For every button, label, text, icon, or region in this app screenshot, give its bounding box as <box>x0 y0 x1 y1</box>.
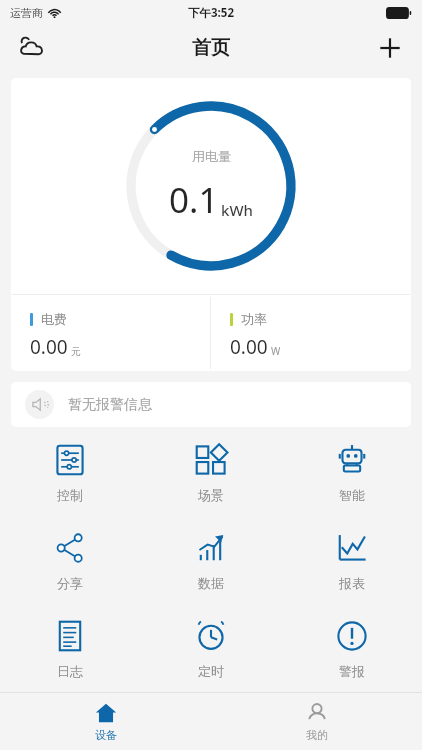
button[interactable]: 智能 <box>281 441 422 505</box>
button[interactable]: 警报 <box>281 617 422 681</box>
button[interactable]: 设备 <box>0 693 211 750</box>
button[interactable]: Weather <box>12 28 52 68</box>
button[interactable]: 定时 <box>140 617 281 681</box>
staticText: 我的 <box>306 728 328 742</box>
staticText: 分享 <box>57 575 83 591</box>
button[interactable]: 日志 <box>0 617 140 681</box>
staticText: 0.1 <box>169 176 219 224</box>
staticText: 定时 <box>198 663 224 679</box>
staticText: 功率 <box>241 311 267 327</box>
staticText: 首页 <box>192 36 230 60</box>
staticText: 智能 <box>339 487 365 503</box>
button[interactable]: 报表 <box>281 529 422 593</box>
staticText: 0.00 <box>30 334 68 360</box>
staticText: 场景 <box>198 487 224 503</box>
button[interactable]: 暂无报警信息 <box>11 382 411 427</box>
button[interactable]: 分享 <box>0 529 140 593</box>
staticText: 运营商 <box>10 6 43 20</box>
staticText: 下午3:52 <box>188 5 234 21</box>
staticText: 0.00 <box>230 334 268 360</box>
staticText: W <box>271 344 281 358</box>
staticText: 控制 <box>57 487 83 503</box>
button[interactable]: 功率 <box>211 295 411 371</box>
button[interactable]: Add <box>370 28 410 68</box>
button[interactable]: 场景 <box>140 441 281 505</box>
staticText: 报表 <box>339 575 365 591</box>
staticText: 警报 <box>339 663 365 679</box>
button[interactable]: 电费 <box>11 295 210 371</box>
staticText: 元 <box>71 345 81 358</box>
staticText: 设备 <box>95 728 117 742</box>
button[interactable]: 控制 <box>0 441 140 505</box>
staticText: 用电量 <box>192 148 231 164</box>
staticText: 电费 <box>41 311 67 327</box>
button[interactable]: 数据 <box>140 529 281 593</box>
staticText: 暂无报警信息 <box>68 396 152 414</box>
staticText: 数据 <box>198 575 224 591</box>
staticText: 日志 <box>57 663 83 679</box>
staticText: kWh <box>221 200 253 220</box>
button[interactable]: 我的 <box>211 693 422 750</box>
